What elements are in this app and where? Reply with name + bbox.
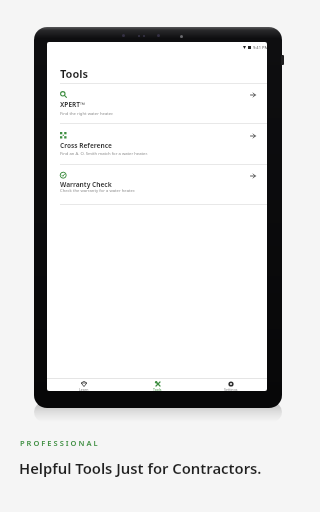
- staticText: Tools: [60, 66, 89, 81]
- staticText: Settings: [224, 387, 238, 391]
- staticText: Find an A. O. Smith match for a water he…: [60, 151, 148, 157]
- staticText: Learn: [79, 387, 89, 391]
- staticText: Find the right water heater.: [60, 111, 114, 117]
- button[interactable]: Learn: [47, 379, 121, 391]
- staticText: Tools: [153, 387, 162, 391]
- button[interactable]: Cross Reference: [47, 128, 267, 164]
- staticText: PROFESSIONAL: [20, 438, 100, 448]
- staticText: XPERT™: [60, 100, 86, 109]
- button[interactable]: Warranty Check: [47, 168, 267, 204]
- staticText: 9:41 PM: [253, 45, 267, 50]
- button[interactable]: XPERT™: [47, 87, 267, 123]
- button[interactable]: Settings: [194, 379, 267, 391]
- button[interactable]: Tools: [121, 379, 194, 391]
- staticText: Helpful Tools Just for Contractors.: [19, 458, 262, 478]
- staticText: Check the warranty for a water heater.: [60, 188, 136, 194]
- staticText: Cross Reference: [60, 141, 112, 150]
- staticText: Warranty Check: [60, 180, 112, 189]
